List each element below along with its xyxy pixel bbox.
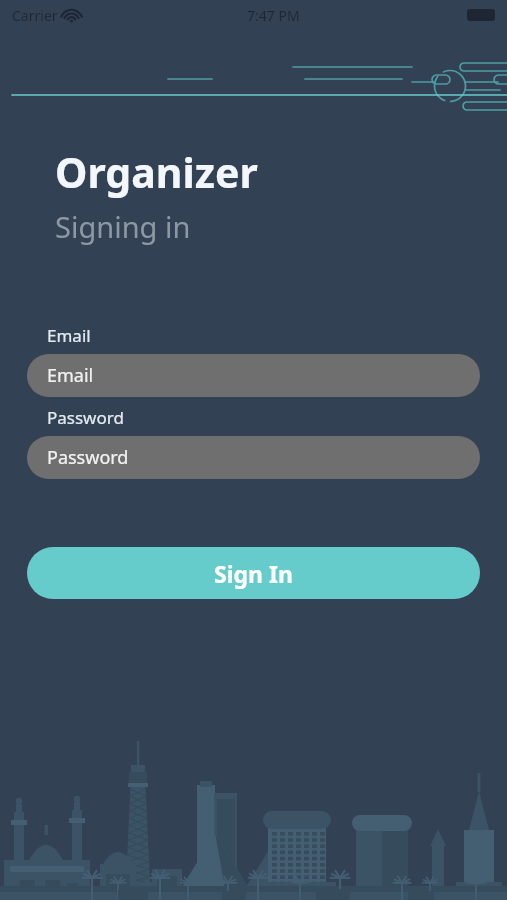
staticText: Signing in — [55, 207, 191, 246]
staticText: Password — [47, 406, 124, 429]
button[interactable]: Email — [27, 354, 480, 397]
staticText: Email — [47, 324, 91, 347]
staticText: Email — [47, 363, 94, 388]
other: Wi-Fi — [63, 9, 80, 22]
staticText: Organizer — [55, 144, 258, 200]
button[interactable]: Password — [27, 436, 480, 479]
button[interactable]: Sign In — [27, 547, 480, 599]
staticText: Carrier — [12, 6, 58, 25]
staticText: Sign In — [214, 558, 293, 589]
staticText: 7:47 PM — [247, 6, 300, 25]
staticText: Password — [47, 445, 129, 470]
